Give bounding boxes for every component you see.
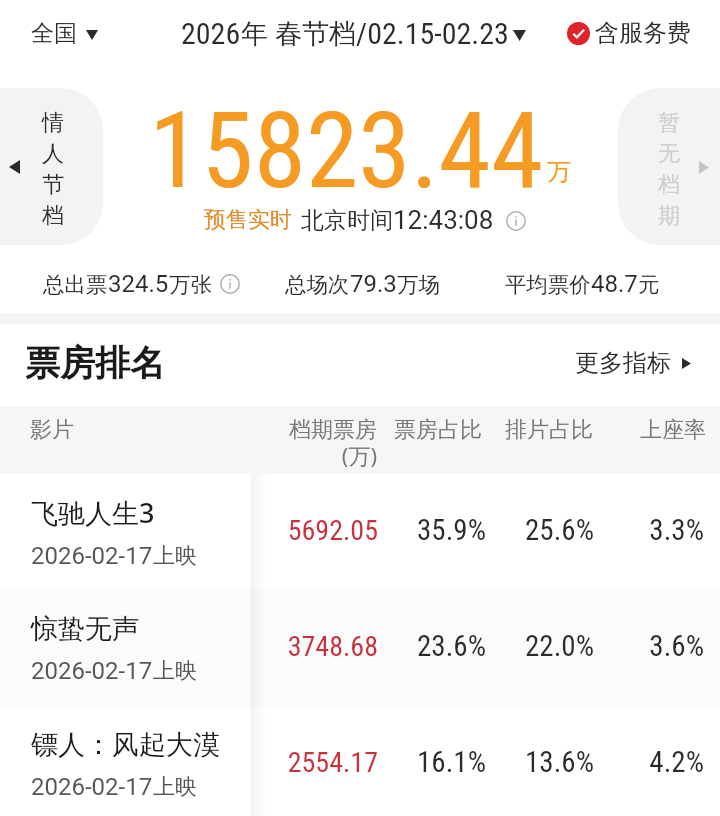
- staticText: 3748.68: [178, 630, 378, 663]
- staticText: 预售实时: [204, 206, 292, 234]
- staticText: 3.3%: [504, 513, 704, 547]
- staticText: 2026-02-17: [31, 657, 153, 685]
- staticText: 元: [638, 271, 660, 298]
- staticText: 上映: [153, 773, 197, 801]
- staticText: 春节档: [275, 17, 356, 51]
- staticText: 排片占比: [393, 416, 593, 444]
- button[interactable]: 暂无档期: [618, 88, 720, 245]
- staticText: 万: [547, 157, 571, 187]
- staticText: 4.2%: [504, 745, 704, 779]
- staticText: 22.0%: [394, 629, 594, 663]
- staticText: 年: [241, 17, 268, 51]
- staticText: 上座率: [506, 416, 706, 444]
- button[interactable]: 惊蛰无声: [0, 590, 720, 706]
- button[interactable]: 含服务费: [567, 18, 691, 48]
- staticText: 2026: [181, 16, 241, 51]
- staticText: 2554.17: [178, 746, 378, 779]
- staticText: 总场次: [285, 271, 350, 298]
- staticText: 16.1%: [286, 745, 486, 779]
- staticText: 平均票价: [505, 271, 591, 298]
- button[interactable]: 预售实时: [204, 205, 526, 235]
- staticText: 23.6%: [286, 629, 486, 663]
- staticText: 79.3: [350, 270, 397, 298]
- staticText: 25.6%: [394, 513, 594, 547]
- staticText: 万张: [169, 271, 212, 298]
- staticText: 35.9%: [286, 513, 486, 547]
- staticText: 48.7: [591, 270, 638, 298]
- staticText: 15823.44: [149, 89, 544, 213]
- button[interactable]: 情人节档: [0, 88, 103, 245]
- staticText: 3.6%: [504, 629, 704, 663]
- staticText: 上映: [153, 657, 197, 685]
- staticText: 票房占比: [282, 416, 482, 444]
- staticText: 12:43:08: [393, 205, 494, 235]
- staticText: 飞驰人生3: [31, 494, 155, 531]
- staticText: 万场: [397, 271, 440, 298]
- staticText: 2026-02-17: [31, 542, 153, 570]
- staticText: 情 人 节 档: [42, 109, 64, 230]
- staticText: 5692.05: [178, 514, 378, 547]
- staticText: 含服务费: [595, 18, 691, 48]
- staticText: 全国: [31, 19, 77, 48]
- staticText: 惊蛰无声: [31, 612, 139, 646]
- button[interactable]: 总出票: [43, 270, 240, 298]
- staticText: 更多指标: [575, 348, 671, 378]
- staticText: 影片: [30, 416, 74, 444]
- staticText: 上映: [153, 542, 197, 570]
- staticText: 镖人：风起大漠: [31, 728, 220, 762]
- staticText: /02.15-02.23: [356, 16, 509, 51]
- staticText: 票房排名: [25, 341, 165, 385]
- staticText: 2026-02-17: [31, 773, 153, 801]
- button[interactable]: 飞驰人生3: [0, 474, 720, 590]
- staticText: 324.5: [108, 270, 169, 298]
- button[interactable]: 更多指标: [575, 348, 691, 378]
- button[interactable]: 全国: [31, 19, 98, 48]
- staticText: 总出票: [43, 271, 108, 298]
- staticText: 档期票房 (万): [177, 416, 377, 470]
- staticText: 暂 无 档 期: [658, 109, 680, 230]
- button[interactable]: 镖人：风起大漠: [0, 706, 720, 816]
- staticText: 北京时间: [301, 206, 393, 235]
- button[interactable]: 2026: [181, 16, 561, 51]
- staticText: 13.6%: [394, 745, 594, 779]
